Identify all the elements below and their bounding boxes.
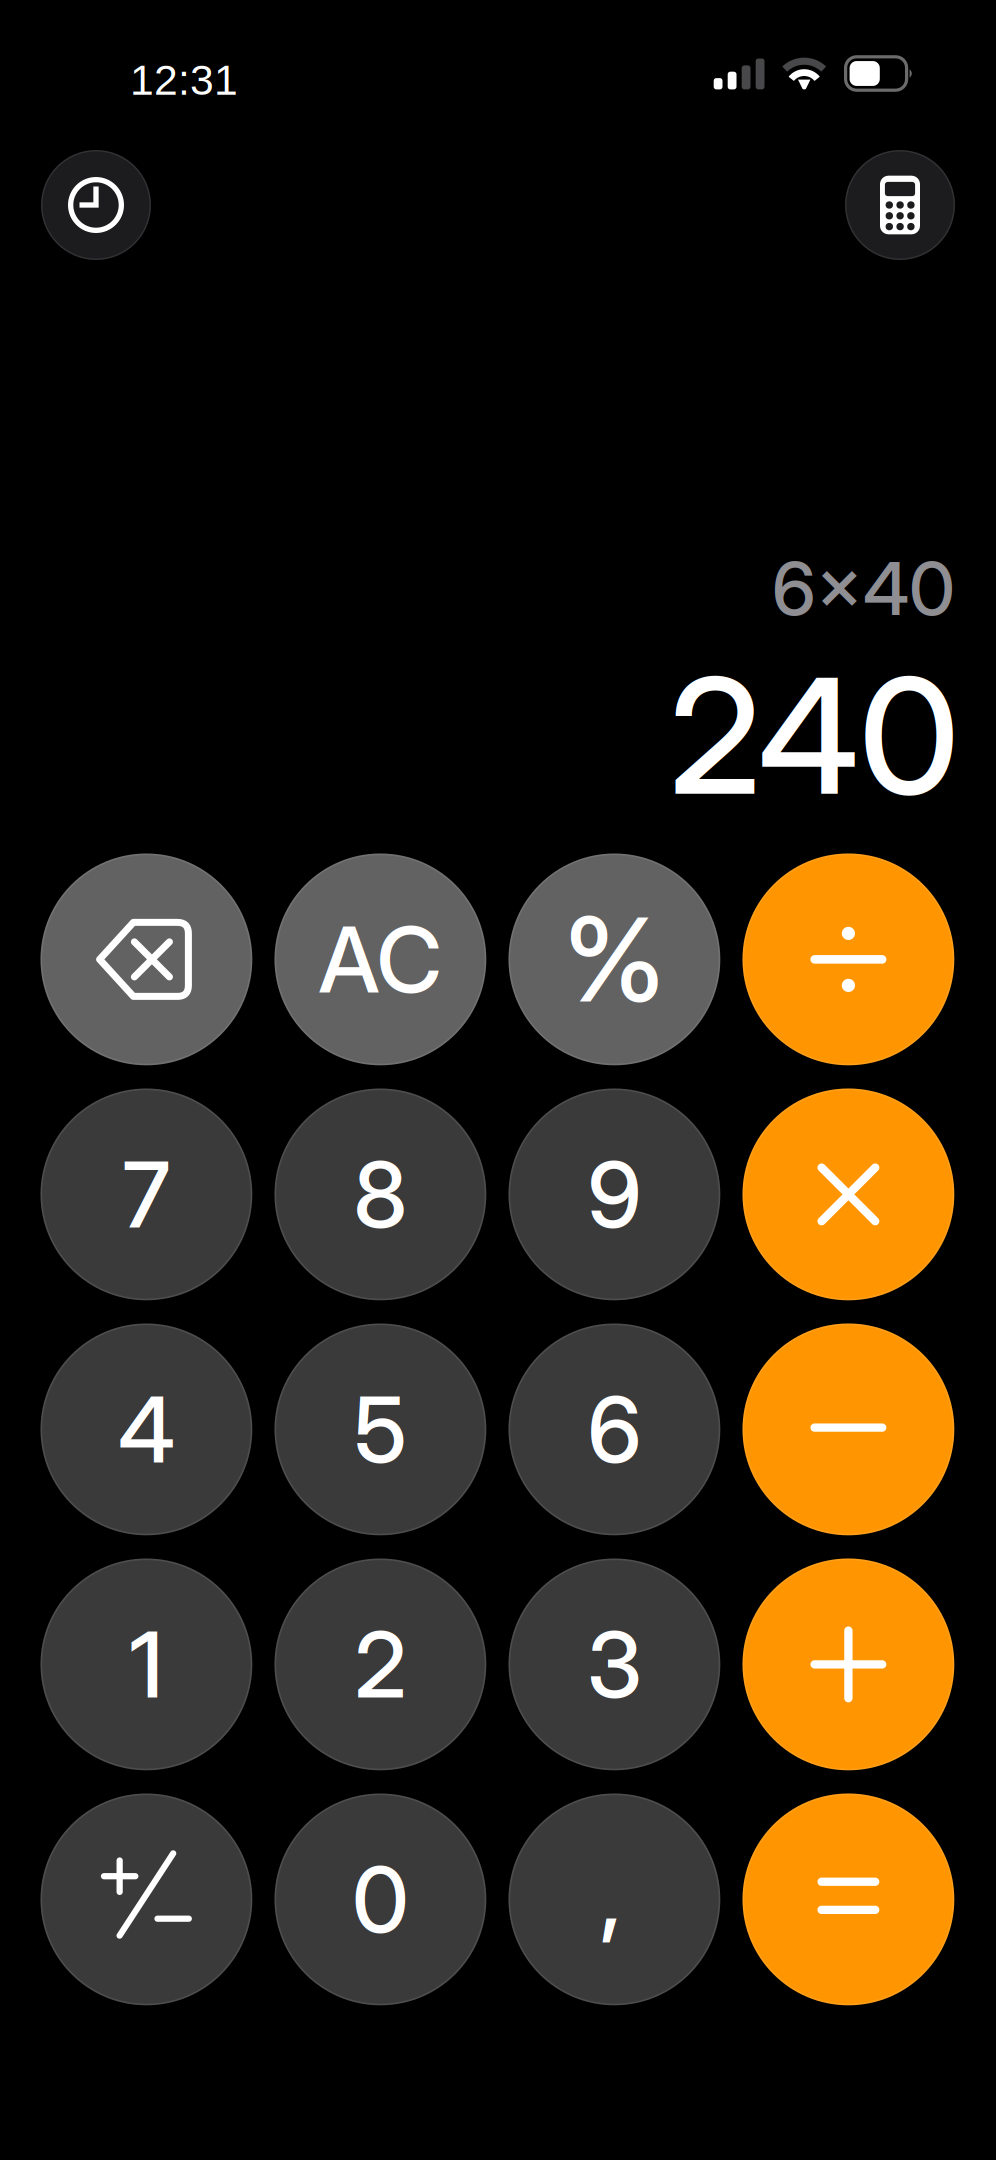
- button[interactable]: History: [41, 150, 151, 260]
- staticText: 4: [118, 1374, 175, 1484]
- button[interactable]: Divide: [742, 853, 954, 1065]
- button[interactable]: 1: [40, 1558, 252, 1770]
- staticText: 3: [587, 1609, 642, 1719]
- button[interactable]: 8: [274, 1088, 486, 1300]
- staticText: 12:31: [130, 56, 238, 104]
- button[interactable]: ,: [508, 1793, 720, 2005]
- button[interactable]: 0: [274, 1793, 486, 2005]
- button[interactable]: 6: [508, 1323, 720, 1535]
- staticText: 7: [122, 1139, 170, 1249]
- staticText: 6: [587, 1374, 641, 1484]
- button[interactable]: %: [508, 853, 720, 1065]
- button[interactable]: Calculator: [845, 150, 955, 260]
- staticText: %: [563, 889, 665, 1030]
- staticText: AC: [318, 904, 442, 1014]
- staticText: 1: [129, 1609, 163, 1719]
- button[interactable]: Delete: [40, 853, 252, 1065]
- button[interactable]: Add: [742, 1558, 954, 1770]
- button[interactable]: 2: [274, 1558, 486, 1770]
- button[interactable]: 9: [508, 1088, 720, 1300]
- staticText: 240: [669, 639, 959, 832]
- staticText: 8: [353, 1139, 407, 1249]
- button[interactable]: Subtract: [742, 1323, 954, 1535]
- button[interactable]: Multiply: [742, 1088, 954, 1300]
- button[interactable]: 5: [274, 1323, 486, 1535]
- staticText: 9: [587, 1139, 641, 1249]
- button[interactable]: Plus minus: [40, 1793, 252, 2005]
- button[interactable]: AC: [274, 853, 486, 1065]
- staticText: 2: [354, 1609, 406, 1719]
- staticText: ,: [600, 1835, 622, 1952]
- staticText: 0: [352, 1844, 409, 1954]
- button[interactable]: 7: [40, 1088, 252, 1300]
- button[interactable]: 4: [40, 1323, 252, 1535]
- staticText: 6×40: [772, 544, 955, 633]
- button[interactable]: 3: [508, 1558, 720, 1770]
- staticText: 5: [354, 1374, 407, 1484]
- button[interactable]: Equals: [742, 1793, 954, 2005]
